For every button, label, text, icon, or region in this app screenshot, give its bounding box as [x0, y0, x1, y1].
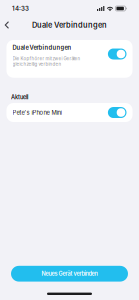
staticText: 14:33: [12, 5, 29, 12]
staticText: Duale Verbindungen: [12, 44, 71, 51]
staticText: Die Kopfhörer mit zwei Geräten gleichzei…: [12, 56, 80, 67]
staticText: Aktuell: [11, 94, 28, 100]
button[interactable]: Pete's iPhone Mini: [0, 103, 139, 122]
staticText: Pete's iPhone Mini: [12, 109, 61, 116]
button[interactable]: Neues Gerät verbinden: [0, 266, 139, 282]
button[interactable]: Duale Verbindungen: [108, 44, 126, 59]
staticText: Duale Verbindungen: [32, 20, 107, 29]
button[interactable]: Back: [0, 18, 14, 32]
staticText: Neues Gerät verbinden: [41, 270, 97, 277]
